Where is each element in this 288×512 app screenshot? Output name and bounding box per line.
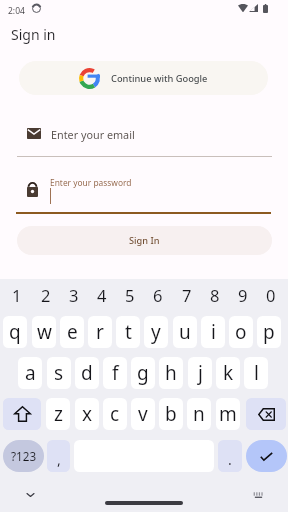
staticText: Enter your email: [51, 127, 135, 142]
staticText: .: [228, 450, 232, 469]
staticText: j: [198, 360, 203, 386]
staticText: c: [110, 401, 120, 427]
staticText: Continue with Google: [111, 72, 208, 85]
staticText: 5: [125, 284, 135, 306]
staticText: f: [112, 360, 119, 386]
button[interactable]: l: [244, 357, 268, 389]
button[interactable]: 9: [229, 280, 257, 310]
button[interactable]: k: [216, 357, 240, 389]
button[interactable]: c: [103, 398, 127, 430]
button[interactable]: 3: [60, 280, 88, 310]
button[interactable]: Hide keyboard: [20, 485, 40, 505]
button[interactable]: 0: [257, 280, 285, 310]
button[interactable]: v: [131, 398, 155, 430]
staticText: 7: [182, 284, 192, 306]
button[interactable]: f: [103, 357, 127, 389]
staticText: 6: [153, 284, 163, 306]
staticText: e: [67, 319, 78, 345]
button[interactable]: i: [201, 316, 225, 348]
button[interactable]: g: [131, 357, 155, 389]
button[interactable]: w: [32, 316, 56, 348]
staticText: 0: [266, 284, 276, 306]
staticText: o: [235, 319, 247, 345]
button[interactable]: 7: [173, 280, 201, 310]
button[interactable]: Backspace: [246, 398, 286, 430]
button[interactable]: Switch keyboard: [248, 485, 268, 505]
button[interactable]: d: [75, 357, 99, 389]
button[interactable]: j: [188, 357, 212, 389]
button[interactable]: .: [218, 440, 242, 472]
staticText: 9: [238, 284, 248, 306]
staticText: k: [223, 360, 234, 386]
staticText: r: [96, 319, 104, 345]
button[interactable]: x: [75, 398, 99, 430]
staticText: g: [137, 360, 149, 386]
button[interactable]: n: [187, 398, 211, 430]
button[interactable]: o: [229, 316, 253, 348]
staticText: 2:04: [8, 5, 25, 17]
staticText: m: [219, 401, 237, 427]
staticText: 4: [97, 284, 107, 306]
button[interactable]: z: [46, 398, 70, 430]
staticText: d: [81, 360, 93, 386]
staticText: t: [125, 319, 132, 345]
staticText: i: [211, 319, 216, 345]
staticText: v: [138, 401, 148, 427]
staticText: p: [263, 319, 275, 345]
button[interactable]: t: [116, 316, 140, 348]
staticText: z: [54, 401, 63, 427]
button[interactable]: b: [159, 398, 183, 430]
staticText: w: [37, 319, 52, 345]
staticText: Sign in: [11, 25, 56, 44]
button[interactable]: ?123: [3, 440, 44, 472]
staticText: Sign In: [129, 234, 160, 247]
button[interactable]: ,: [47, 440, 70, 472]
button[interactable]: 8: [201, 280, 229, 310]
button[interactable]: a: [18, 357, 42, 389]
staticText: b: [165, 401, 177, 427]
button[interactable]: s: [47, 357, 71, 389]
staticText: u: [179, 319, 191, 345]
staticText: ,: [57, 450, 61, 469]
staticText: 2: [41, 284, 51, 306]
button[interactable]: 6: [144, 280, 172, 310]
button[interactable]: Enter: [246, 440, 287, 472]
staticText: n: [193, 401, 205, 427]
staticText: ?123: [11, 448, 37, 464]
staticText: 8: [210, 284, 220, 306]
staticText: 3: [69, 284, 79, 306]
button[interactable]: r: [88, 316, 112, 348]
button[interactable]: e: [60, 316, 84, 348]
staticText: s: [54, 360, 64, 386]
staticText: h: [165, 360, 177, 386]
staticText: y: [151, 319, 161, 345]
button[interactable]: Continue with Google: [19, 61, 268, 95]
staticText: x: [82, 401, 93, 427]
button[interactable]: h: [159, 357, 183, 389]
staticText: l: [254, 360, 259, 386]
button[interactable]: 1: [3, 280, 31, 310]
staticText: Enter your password: [50, 177, 132, 188]
button[interactable]: p: [257, 316, 281, 348]
staticText: a: [25, 360, 36, 386]
button[interactable]: Sign In: [17, 226, 272, 255]
button[interactable]: 2: [32, 280, 60, 310]
button[interactable]: y: [144, 316, 168, 348]
button[interactable]: u: [173, 316, 197, 348]
button[interactable]: 4: [88, 280, 116, 310]
button[interactable]: Shift: [3, 398, 41, 430]
button[interactable]: m: [216, 398, 240, 430]
button[interactable]: q: [3, 316, 27, 348]
staticText: q: [9, 319, 21, 345]
button[interactable]: 5: [116, 280, 144, 310]
staticText: 1: [12, 284, 22, 306]
